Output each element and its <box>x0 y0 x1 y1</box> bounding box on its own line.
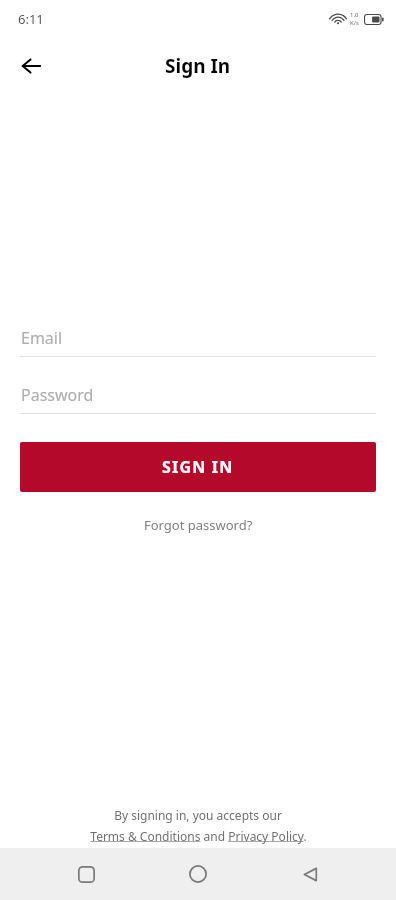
button[interactable]: Email <box>20 320 376 357</box>
button[interactable]: Recent apps <box>60 848 112 900</box>
staticText: SIGN IN <box>162 456 234 478</box>
staticText: Password <box>21 384 94 406</box>
staticText: Forgot password? <box>144 516 253 534</box>
staticText: Email <box>21 327 63 349</box>
staticText: Terms & Conditions and Privacy Policy. <box>90 828 307 844</box>
button[interactable]: Terms & Conditions and Privacy Policy. <box>90 828 307 844</box>
button[interactable]: Password <box>20 377 376 414</box>
staticText: 1.0 <box>350 11 359 19</box>
staticText: K/s <box>350 19 359 27</box>
staticText: Sign In <box>165 53 231 79</box>
button[interactable]: SIGN IN <box>20 442 376 492</box>
staticText: By signing in, you accepts our <box>114 807 282 823</box>
button[interactable]: Back <box>10 45 52 87</box>
button[interactable]: Forgot password? <box>136 512 261 538</box>
button[interactable]: Home <box>172 848 224 900</box>
staticText: 6:11 <box>18 10 44 28</box>
button[interactable]: Back <box>284 848 336 900</box>
